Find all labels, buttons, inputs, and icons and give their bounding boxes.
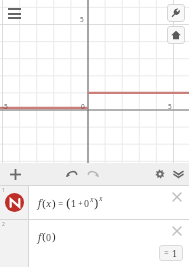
staticText: x (90, 195, 94, 204)
staticText: 0 (81, 102, 85, 111)
staticText: ) (52, 196, 56, 211)
button[interactable]: = (159, 245, 183, 261)
button[interactable]: Delete (170, 190, 184, 204)
staticText: x (99, 194, 103, 203)
button[interactable]: f (29, 220, 189, 267)
staticText: -5 (2, 102, 8, 111)
staticText: ) (52, 229, 56, 244)
staticText: ( (66, 194, 71, 212)
button[interactable]: Home (167, 26, 185, 44)
staticText: ) (94, 194, 99, 212)
button[interactable]: Settings (167, 4, 185, 22)
staticText: 5 (168, 102, 172, 111)
button[interactable]: Redo (84, 165, 102, 183)
staticText: f (38, 230, 42, 244)
staticText: ( (42, 196, 46, 211)
button[interactable]: Collapse (169, 165, 187, 183)
button[interactable]: Settings (151, 165, 169, 183)
button[interactable]: Delete (170, 224, 184, 238)
staticText: ( (42, 229, 46, 244)
staticText: 5 (80, 15, 84, 24)
button[interactable]: Add expression (6, 165, 24, 183)
staticText: x (46, 197, 52, 210)
staticText: + (78, 197, 83, 209)
button[interactable]: Menu (5, 5, 23, 23)
staticText: = (164, 247, 169, 259)
staticText: f (38, 196, 42, 210)
button[interactable]: Undo (62, 165, 80, 183)
staticText: 2 (2, 221, 5, 228)
staticText: = (58, 197, 64, 210)
staticText: 0 (84, 197, 90, 209)
staticText: 1 (2, 187, 5, 194)
staticText: 1 (172, 247, 178, 259)
button[interactable]: f (29, 186, 189, 219)
button[interactable]: Curve style (5, 193, 24, 212)
staticText: 0 (46, 231, 52, 243)
staticText: 1 (71, 197, 77, 209)
